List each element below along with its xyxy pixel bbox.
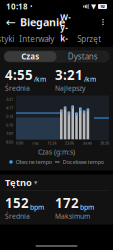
staticText: Czas (g:m:s) [38, 148, 75, 156]
staticText: ▾ [34, 179, 37, 186]
staticText: 172 [55, 194, 79, 212]
staticText: ▼ [91, 3, 96, 10]
button[interactable]: Więcej opcji [95, 13, 111, 31]
staticText: Średnia [5, 212, 30, 221]
staticText: 8:03 [6, 139, 13, 144]
button[interactable]: Interwały [16, 31, 57, 47]
staticText: 4:55 [5, 66, 33, 84]
staticText: Obecne tempo [16, 158, 52, 165]
staticText: 4:17 [6, 105, 13, 110]
button[interactable]: Czas [4, 51, 56, 62]
staticText: • [30, 2, 33, 11]
staticText: 15:24 [47, 140, 56, 146]
button[interactable]: Wstecz [2, 13, 20, 31]
staticText: Bieganie [20, 15, 65, 29]
staticText: 0:00 [16, 140, 23, 146]
button[interactable]: Dystans [56, 51, 109, 62]
button[interactable]: styki [0, 31, 16, 47]
staticText: /km [34, 75, 46, 84]
staticText: Tętno [5, 176, 32, 189]
staticText: 152 [5, 194, 29, 212]
button[interactable]: Wykresy [57, 31, 74, 47]
staticText: Średnia [5, 84, 30, 93]
staticText: 5:14 [6, 114, 13, 119]
staticText: Docelowe tempo [63, 158, 104, 165]
staticText: 38:30 [100, 140, 109, 146]
staticText: 23:06 [65, 140, 74, 146]
button[interactable]: Sprzęt [74, 31, 104, 47]
staticText: 92 [100, 4, 104, 9]
staticText: Interwały [19, 34, 54, 44]
staticText: Wykresy [60, 12, 71, 65]
staticText: bpm [30, 203, 44, 212]
staticText: 30:48 [82, 140, 91, 146]
staticText: 7:42 [32, 140, 39, 146]
staticText: Najlepszy [55, 84, 85, 93]
staticText: 10:18 [6, 1, 28, 12]
staticText: 3:21 [6, 97, 13, 102]
button[interactable]: Tętno [0, 174, 113, 190]
staticText: 6:10 [6, 122, 13, 127]
staticText: 7:07 [6, 131, 13, 136]
staticText: Sprzęt [77, 34, 101, 44]
staticText: Dystans [68, 51, 98, 62]
staticText: Maksimum [55, 212, 90, 221]
staticText: styki [0, 34, 14, 44]
staticText: Czas [21, 51, 39, 62]
staticText: bpm [80, 203, 94, 212]
staticText: /km [84, 75, 96, 84]
staticText: ← [6, 15, 16, 29]
staticText: 3:21 [55, 66, 83, 84]
